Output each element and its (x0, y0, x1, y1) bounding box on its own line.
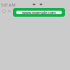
staticText: www.example.com (22, 10, 56, 15)
button[interactable]: Forward (7, 9, 12, 13)
button[interactable]: www.example.com (13, 8, 65, 17)
button[interactable]: Back (2, 9, 7, 14)
staticText: 9:41 AM (1, 2, 16, 7)
button[interactable]: Signal (32, 3, 36, 6)
button[interactable]: Battery (39, 3, 43, 6)
